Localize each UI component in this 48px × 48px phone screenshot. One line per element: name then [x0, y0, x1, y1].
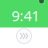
button[interactable]: Continue — [16, 28, 31, 43]
staticText: 9:41 — [11, 6, 39, 25]
